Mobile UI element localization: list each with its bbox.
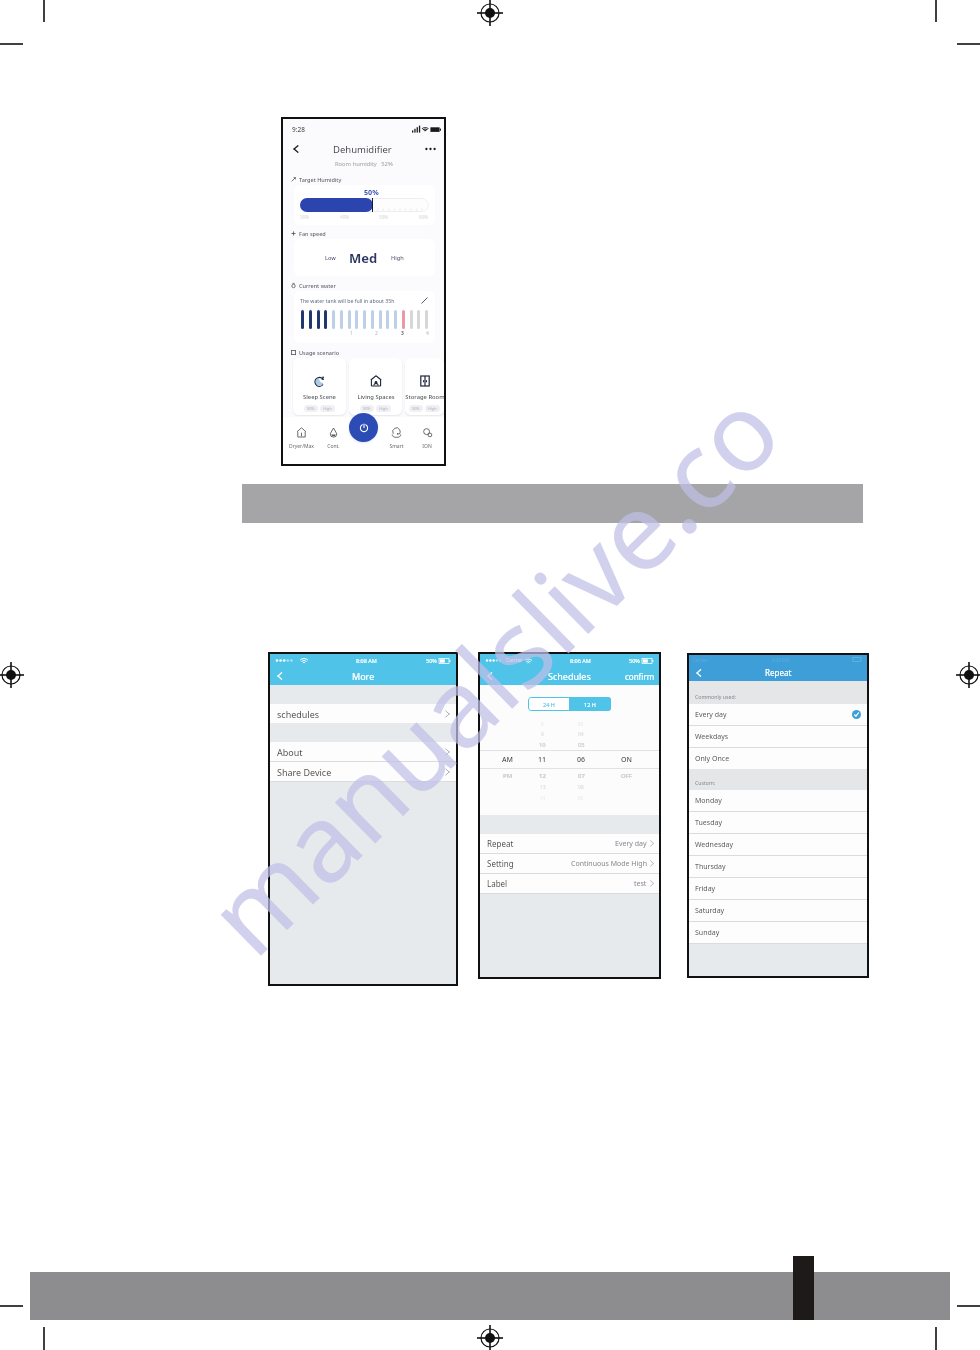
staticText: Smart (389, 443, 404, 450)
staticText: 8:06 AM (570, 657, 591, 664)
staticText: Target Humidity (299, 176, 342, 183)
staticText: Continuous Mode High (571, 859, 647, 869)
staticText: Tuesday (695, 818, 722, 828)
staticText: 12 (539, 772, 546, 780)
staticText: 50% (412, 406, 420, 411)
button[interactable]: Only Once (689, 748, 867, 769)
staticText: 03 (578, 721, 584, 727)
staticText: Thursday (695, 862, 726, 872)
button[interactable]: Back (484, 670, 496, 682)
staticText: 9 (541, 731, 544, 738)
staticText: AM (502, 755, 514, 765)
staticText: 8 (541, 721, 544, 727)
button[interactable]: More options (423, 142, 437, 156)
staticText: 3 (401, 330, 404, 337)
staticText: Cont. (327, 443, 340, 450)
button[interactable]: Cont. (318, 427, 348, 450)
button[interactable]: Living Spaces (349, 358, 402, 415)
staticText: 60% (419, 214, 429, 220)
button[interactable]: Every day (689, 704, 867, 725)
staticText: Fan speed (299, 230, 326, 237)
button[interactable]: Back (289, 142, 303, 156)
button[interactable]: Sleep Scene (293, 358, 346, 415)
staticText: 30% (300, 214, 310, 220)
staticText: Every day (695, 710, 727, 720)
staticText: 50% (364, 187, 379, 197)
staticText: 14 (540, 795, 546, 801)
button[interactable]: Wednesday (689, 834, 867, 855)
staticText: Carrier (506, 657, 523, 664)
button[interactable]: Weekdays (689, 726, 867, 747)
staticText: Med (349, 249, 378, 267)
staticText: High (323, 406, 332, 411)
button[interactable]: schedules (270, 704, 456, 723)
staticText: 5:39 PM (772, 657, 789, 663)
staticText: 06 (577, 755, 586, 765)
button[interactable]: 12 H (569, 697, 611, 711)
button[interactable]: Back (693, 667, 705, 679)
button[interactable]: Monday (689, 790, 867, 811)
staticText: Repeat (487, 838, 514, 849)
button[interactable]: Back (274, 670, 286, 682)
staticText: 50% (629, 657, 640, 664)
staticText: 07 (578, 772, 585, 780)
button[interactable]: Sunday (689, 922, 867, 943)
staticText: Carrier (693, 657, 708, 663)
staticText: 9:28 (292, 125, 305, 134)
button[interactable]: Med (342, 249, 385, 267)
button[interactable]: Power (349, 413, 378, 442)
staticText: 50% (363, 406, 371, 411)
button[interactable]: Dryer/Max (286, 427, 316, 450)
button[interactable]: High (385, 254, 410, 262)
staticText: 05 (578, 741, 585, 749)
staticText: 09 (578, 795, 584, 801)
staticText: Living Spaces (357, 393, 395, 401)
staticText: More (352, 670, 375, 682)
staticText: 08 (578, 784, 584, 791)
staticText: Storage Room (405, 393, 444, 401)
button[interactable]: Storage Room (405, 358, 444, 415)
button[interactable]: Thursday (689, 856, 867, 877)
staticText: 50% (426, 657, 437, 664)
staticText: 50% (307, 406, 315, 411)
staticText: 4 (426, 330, 429, 337)
staticText: Sleep Scene (303, 393, 336, 401)
button[interactable]: 24 H (528, 697, 569, 711)
staticText: 10 (539, 741, 546, 749)
button[interactable]: Friday (689, 878, 867, 899)
button[interactable]: Share Device (270, 762, 456, 781)
staticText: Friday (695, 884, 716, 894)
staticText: 2 (375, 330, 378, 337)
staticText: ION (422, 443, 432, 450)
staticText: High (379, 406, 388, 411)
staticText: Setting (487, 858, 514, 869)
button[interactable]: Saturday (689, 900, 867, 921)
staticText: 04 (578, 731, 584, 738)
button[interactable]: Tuesday (689, 812, 867, 833)
staticText: Custom: (695, 779, 716, 786)
button[interactable]: Setting (480, 854, 659, 873)
staticText: 11 (538, 755, 547, 765)
staticText: 12 H (584, 701, 596, 708)
staticText: Dryer/Max (289, 443, 314, 450)
staticText: 8:08 AM (356, 657, 377, 664)
staticText: 1 (350, 330, 353, 337)
staticText: High (391, 254, 404, 262)
button[interactable]: Low (319, 254, 342, 262)
staticText: OFF (621, 772, 633, 780)
staticText: Every day (615, 839, 647, 849)
staticText: The water tank will be full in about 35h (300, 297, 395, 304)
staticText: 50% (379, 214, 389, 220)
staticText: Wednesday (695, 840, 734, 850)
button[interactable]: Repeat (480, 834, 659, 853)
staticText: Schedules (548, 670, 591, 682)
button[interactable]: Expand (420, 296, 429, 305)
button[interactable]: About (270, 742, 456, 761)
button[interactable]: Label (480, 874, 659, 893)
button[interactable]: confirm (625, 671, 655, 682)
button[interactable]: ION (412, 427, 442, 450)
button[interactable]: Smart (381, 427, 411, 450)
staticText: manualslive.com (175, 320, 829, 966)
staticText: confirm (625, 671, 655, 682)
staticText: Sunday (695, 928, 720, 938)
